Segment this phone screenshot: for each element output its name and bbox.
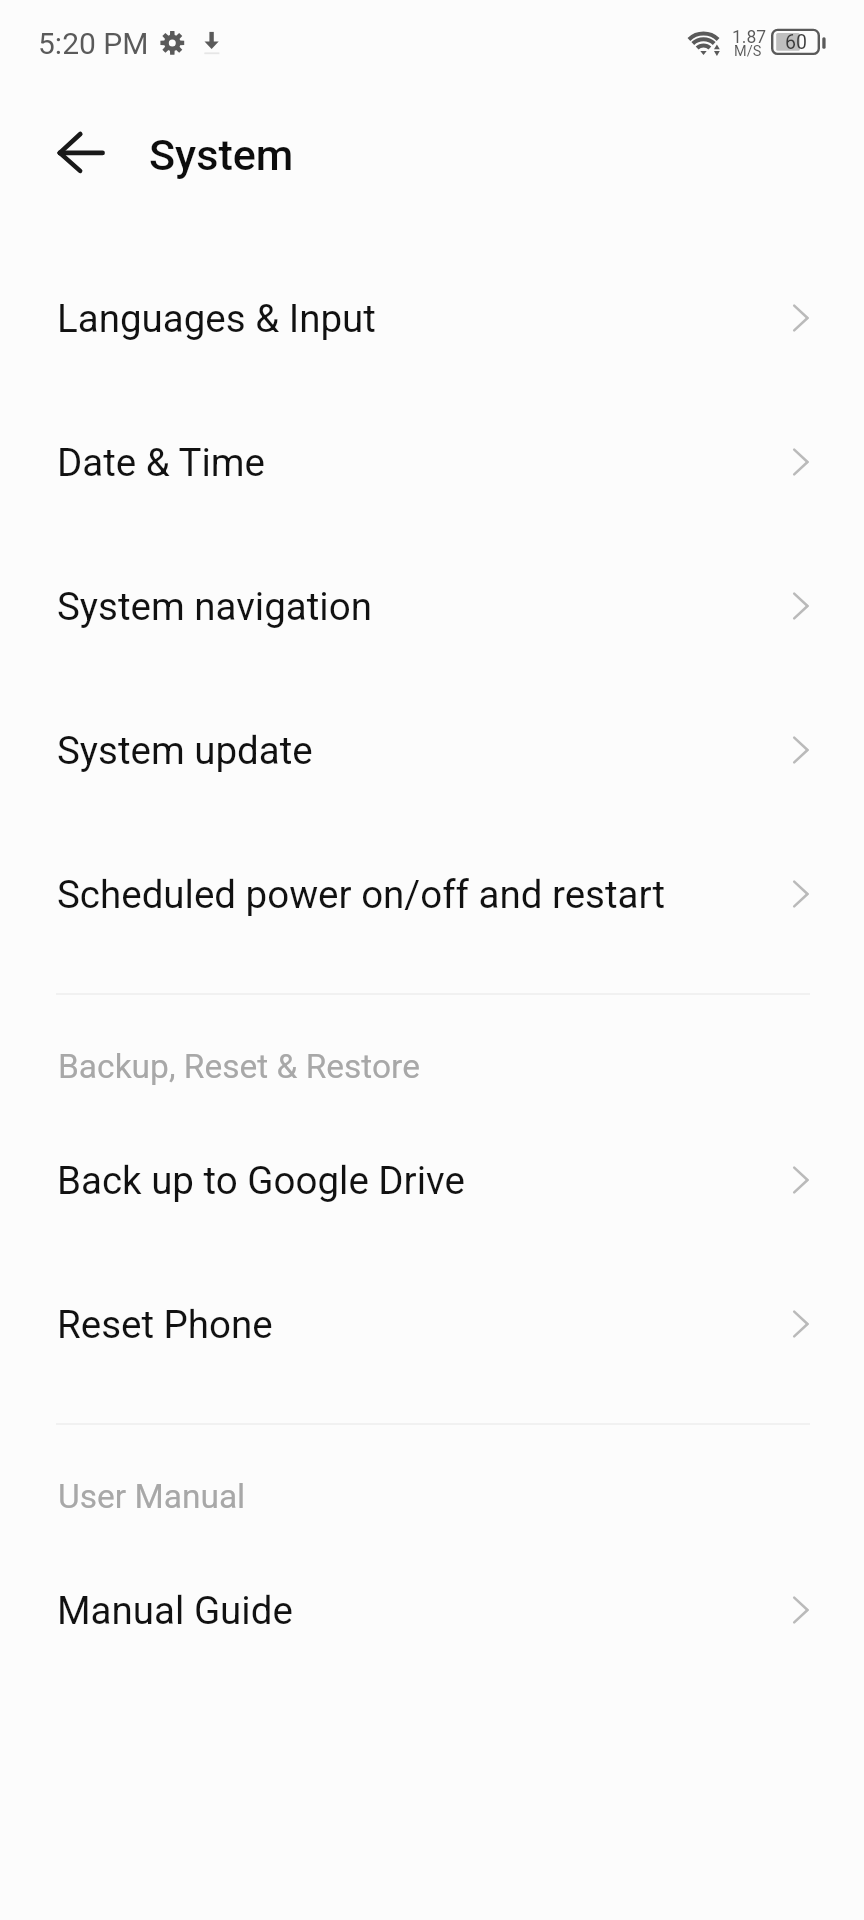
button[interactable]: System update: [0, 678, 864, 822]
staticText: Back up to Google Drive: [57, 1158, 465, 1203]
staticText: Backup, Reset & Restore: [58, 1047, 420, 1086]
staticText: Manual Guide: [57, 1588, 293, 1633]
button[interactable]: Reset Phone: [0, 1252, 864, 1396]
button[interactable]: System navigation: [0, 534, 864, 678]
button[interactable]: Date & Time: [0, 390, 864, 534]
staticText: System navigation: [57, 584, 372, 629]
staticText: Date & Time: [57, 440, 266, 485]
button[interactable]: Manual Guide: [0, 1538, 864, 1682]
button[interactable]: Languages & Input: [0, 246, 864, 390]
button[interactable]: Scheduled power on/off and restart: [0, 822, 864, 966]
staticText: Languages & Input: [57, 296, 376, 341]
button[interactable]: Back up to Google Drive: [0, 1108, 864, 1252]
button[interactable]: Back: [40, 125, 98, 183]
staticText: System: [149, 130, 294, 181]
staticText: 60: [785, 31, 807, 54]
staticText: System update: [57, 728, 313, 773]
staticText: M/S: [734, 43, 762, 60]
staticText: Scheduled power on/off and restart: [57, 872, 666, 917]
staticText: Reset Phone: [57, 1302, 273, 1347]
staticText: 5:20 PM: [38, 26, 149, 61]
staticText: 1.87: [732, 27, 767, 48]
staticText: User Manual: [58, 1477, 246, 1516]
